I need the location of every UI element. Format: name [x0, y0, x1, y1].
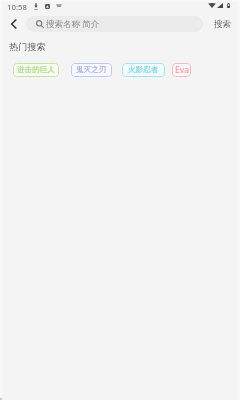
- button[interactable]: Eva: [172, 63, 191, 77]
- staticText: 搜索名称 简介: [46, 18, 100, 30]
- staticText: 搜索: [214, 19, 231, 30]
- button[interactable]: 搜索: [206, 16, 238, 32]
- staticText: 热门搜索: [9, 41, 46, 53]
- button[interactable]: 鬼灭之刃: [71, 63, 112, 77]
- button[interactable]: 火影忍者: [122, 63, 165, 77]
- staticText: 火影忍者: [128, 65, 159, 75]
- staticText: 10:58: [7, 2, 27, 13]
- staticText: Eva: [175, 64, 189, 76]
- staticText: 鬼灭之刃: [76, 65, 107, 75]
- staticText: 进击的巨人: [17, 65, 55, 75]
- button[interactable]: 进击的巨人: [13, 63, 59, 77]
- button[interactable]: Back: [4, 14, 24, 34]
- button[interactable]: 搜索名称 简介: [26, 16, 203, 32]
